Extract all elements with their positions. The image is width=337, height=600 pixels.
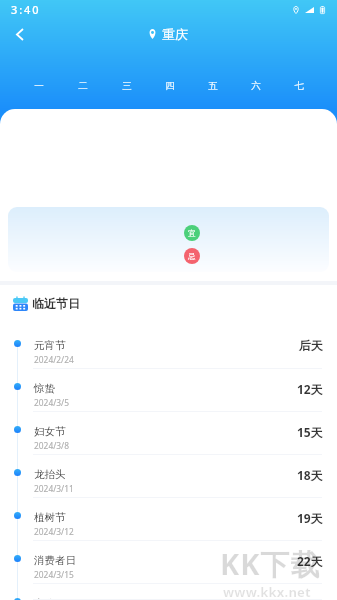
staticText: 春分 [34,597,55,600]
button[interactable]: 植树节 [0,498,337,541]
staticText: 三 [122,80,132,92]
staticText: 二 [78,80,88,92]
staticText: 2024/3/11 [34,483,74,494]
button[interactable]: Back [8,23,30,45]
staticText: 2024/3/5 [34,397,70,408]
staticText: 2024/3/12 [34,526,74,537]
button[interactable]: 二 [61,74,105,98]
staticText: 3:40 [11,2,41,17]
staticText: 忌 [188,252,196,261]
button[interactable]: 妇女节 [0,412,337,455]
button[interactable]: 龙抬头 [0,455,337,498]
button[interactable]: 七 [277,74,320,98]
staticText: KK下载 [220,544,321,584]
button[interactable]: 五 [191,74,234,98]
button[interactable]: 元宵节 [0,326,337,369]
staticText: 2024/2/24 [34,354,74,365]
staticText: 18天 [297,467,323,483]
button[interactable]: 惊蛰 [0,369,337,412]
staticText: 22天 [297,553,323,569]
staticText: 植树节 [34,511,66,524]
staticText: 2024/3/8 [34,440,70,451]
staticText: 宜 [188,229,196,238]
button[interactable]: 消费者日 [0,541,337,584]
staticText: 消费者日 [34,554,76,567]
staticText: 六 [251,80,261,92]
staticText: 后天 [299,338,323,353]
button[interactable]: 宜 [8,207,329,272]
staticText: 龙抬头 [34,468,66,481]
staticText: 妇女节 [34,425,66,438]
staticText: 12天 [297,381,323,397]
button[interactable]: 春分 [0,584,337,600]
staticText: 四 [165,80,175,92]
staticText: 2024/3/15 [34,569,74,580]
staticText: 一 [34,80,44,92]
button[interactable]: 一 [17,74,61,98]
staticText: 27天 [297,596,323,600]
staticText: 15天 [297,424,323,440]
staticText: 临近节日 [32,296,80,311]
button[interactable]: 三 [105,74,148,98]
staticText: 重庆 [162,26,188,42]
staticText: 元宵节 [34,339,66,352]
staticText: www.kkx.net [223,583,311,600]
button[interactable]: 四 [148,74,191,98]
button[interactable]: 重庆 [149,26,188,42]
staticText: 七 [294,80,304,92]
staticText: 19天 [297,510,323,526]
staticText: 惊蛰 [34,382,55,395]
button[interactable]: 六 [234,74,277,98]
staticText: 五 [208,80,218,92]
